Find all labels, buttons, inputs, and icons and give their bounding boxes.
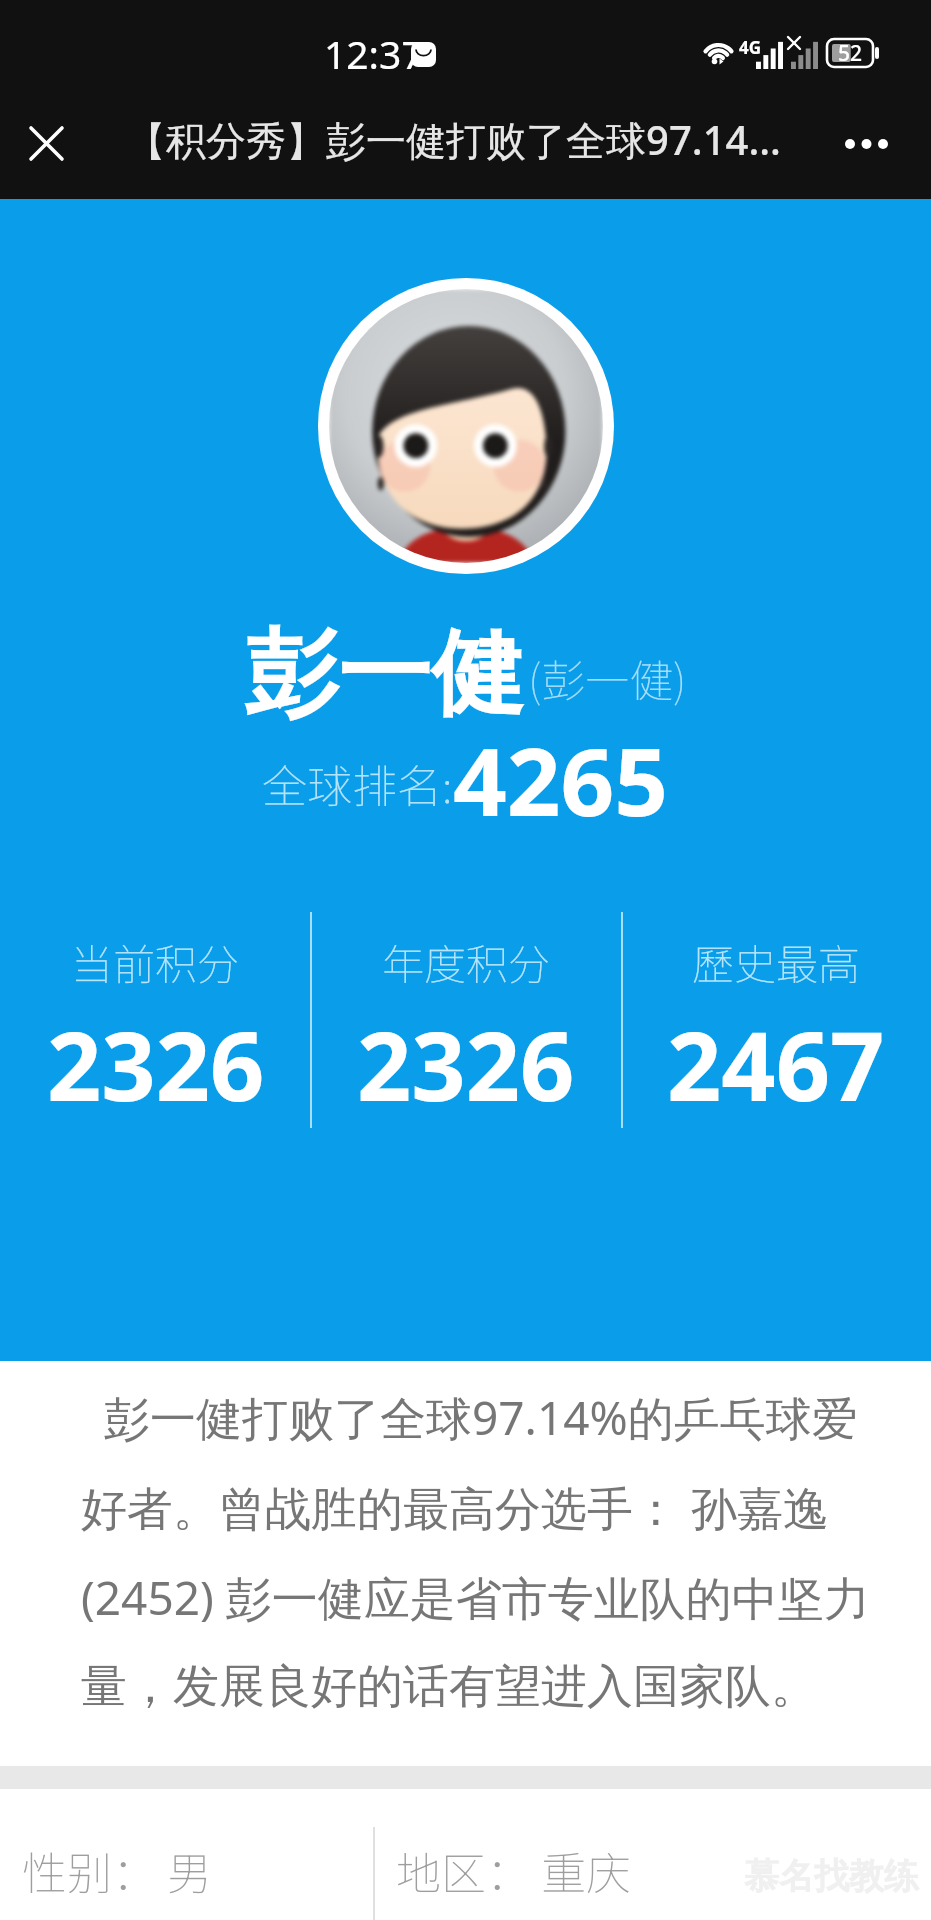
staticText: 4G bbox=[739, 36, 762, 59]
button[interactable]: 【积分秀】彭一健打败了全球97.14… bbox=[110, 90, 810, 199]
staticText: 2326 bbox=[47, 999, 265, 1128]
staticText: 当前积分 bbox=[71, 931, 240, 992]
button[interactable]: 性别： 男 bbox=[0, 1789, 373, 1920]
staticText: 性别： 男 bbox=[22, 1838, 212, 1903]
staticText: 12:37 bbox=[324, 27, 424, 80]
button[interactable]: 地区： 重庆 bbox=[375, 1789, 725, 1920]
staticText: 彭一健 bbox=[245, 615, 524, 732]
staticText: 52 bbox=[838, 39, 863, 67]
staticText: 4265 bbox=[453, 716, 669, 844]
staticText: 【积分秀】彭一健打败了全球97.14… bbox=[126, 112, 781, 167]
staticText: 2467 bbox=[667, 999, 885, 1128]
button[interactable]: More options bbox=[826, 104, 906, 184]
staticText: 慕名找教练 bbox=[744, 1854, 919, 1898]
staticText: 全球排名: bbox=[262, 751, 453, 816]
staticText: 2326 bbox=[357, 999, 575, 1128]
staticText: 年度积分 bbox=[382, 931, 551, 992]
staticText: 歷史最高 bbox=[692, 931, 861, 992]
button[interactable]: Close bbox=[6, 103, 86, 183]
staticText: 彭一健打败了全球97.14%的乒乓球爱好者。曾战胜的最高分选手： 孙嘉逸(245… bbox=[81, 1386, 881, 1716]
staticText: (彭一健) bbox=[528, 646, 687, 710]
staticText: 地区： 重庆 bbox=[396, 1838, 631, 1903]
